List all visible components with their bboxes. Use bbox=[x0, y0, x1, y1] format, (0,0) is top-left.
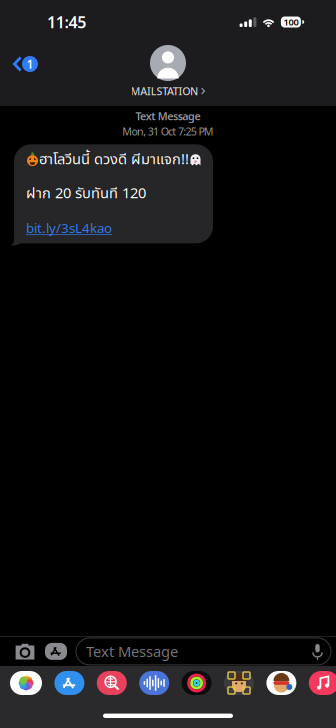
staticText: 1 bbox=[26, 56, 33, 72]
button[interactable]: Text Message bbox=[76, 638, 331, 665]
button[interactable]: App Store bbox=[54, 671, 84, 695]
staticText: Text Message bbox=[135, 109, 201, 123]
button[interactable]: Photos bbox=[10, 671, 42, 695]
button[interactable]: Music bbox=[309, 671, 336, 695]
button[interactable]: Camera bbox=[14, 643, 36, 660]
staticText: Text Message bbox=[86, 642, 178, 661]
staticText: ฝาก 20 รับทันที 120 bbox=[26, 183, 146, 205]
staticText: 100 bbox=[283, 16, 298, 28]
button[interactable]: Stickers bbox=[266, 671, 296, 695]
staticText: Mon, 31 Oct 7:25 PM bbox=[122, 124, 214, 138]
button[interactable]: Apps bbox=[45, 643, 67, 660]
staticText: ฮาโลวีนนี้ ดวงดี ผีมาแจก!! bbox=[39, 149, 189, 171]
staticText: bit.ly/3sL4kao bbox=[26, 219, 112, 237]
button[interactable]: Fitness bbox=[182, 671, 212, 695]
button[interactable]: Audio bbox=[139, 671, 169, 695]
button[interactable]: 1 bbox=[0, 49, 48, 79]
staticText: MAILSTATION bbox=[131, 84, 198, 98]
button[interactable]: Memoji bbox=[224, 671, 254, 695]
button[interactable]: Search bbox=[97, 671, 127, 695]
button[interactable]: MAILSTATION bbox=[131, 45, 205, 98]
staticText: 11:45 bbox=[47, 11, 86, 33]
